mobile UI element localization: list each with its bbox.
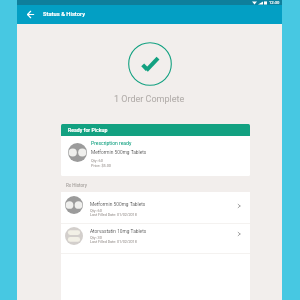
staticText: Status & History — [43, 11, 85, 18]
staticText: Qty: 60 — [91, 158, 103, 162]
staticText: Ready for Pickup — [68, 127, 108, 133]
staticText: 1 Order Complete — [114, 94, 185, 105]
staticText: 12:30 — [269, 0, 280, 5]
button[interactable]: Ready for Pickup — [61, 124, 250, 176]
button[interactable]: Metformin 500mg Tablets — [61, 192, 250, 223]
staticText: Atorvastatin 10mg Tablets — [90, 229, 147, 235]
button[interactable]: Open details — [233, 228, 245, 240]
staticText: Metformin 500mg Tablets — [90, 202, 146, 208]
staticText: Price: $5.00 — [91, 163, 112, 167]
button[interactable]: Open details — [233, 200, 245, 212]
button[interactable]: Back — [17, 5, 43, 24]
staticText: Prescription ready — [91, 140, 132, 146]
staticText: Qty: 60 — [90, 208, 102, 212]
staticText: Last Filled Date: 01/02/2018 — [90, 240, 137, 244]
staticText: Metformin 500mg Tablets — [91, 150, 147, 156]
staticText: Rx History — [66, 183, 87, 188]
button[interactable]: Atorvastatin 10mg Tablets — [61, 224, 250, 253]
staticText: Qty: 30 — [90, 235, 102, 239]
staticText: Last Filled Date: 01/02/2018 — [90, 213, 137, 217]
